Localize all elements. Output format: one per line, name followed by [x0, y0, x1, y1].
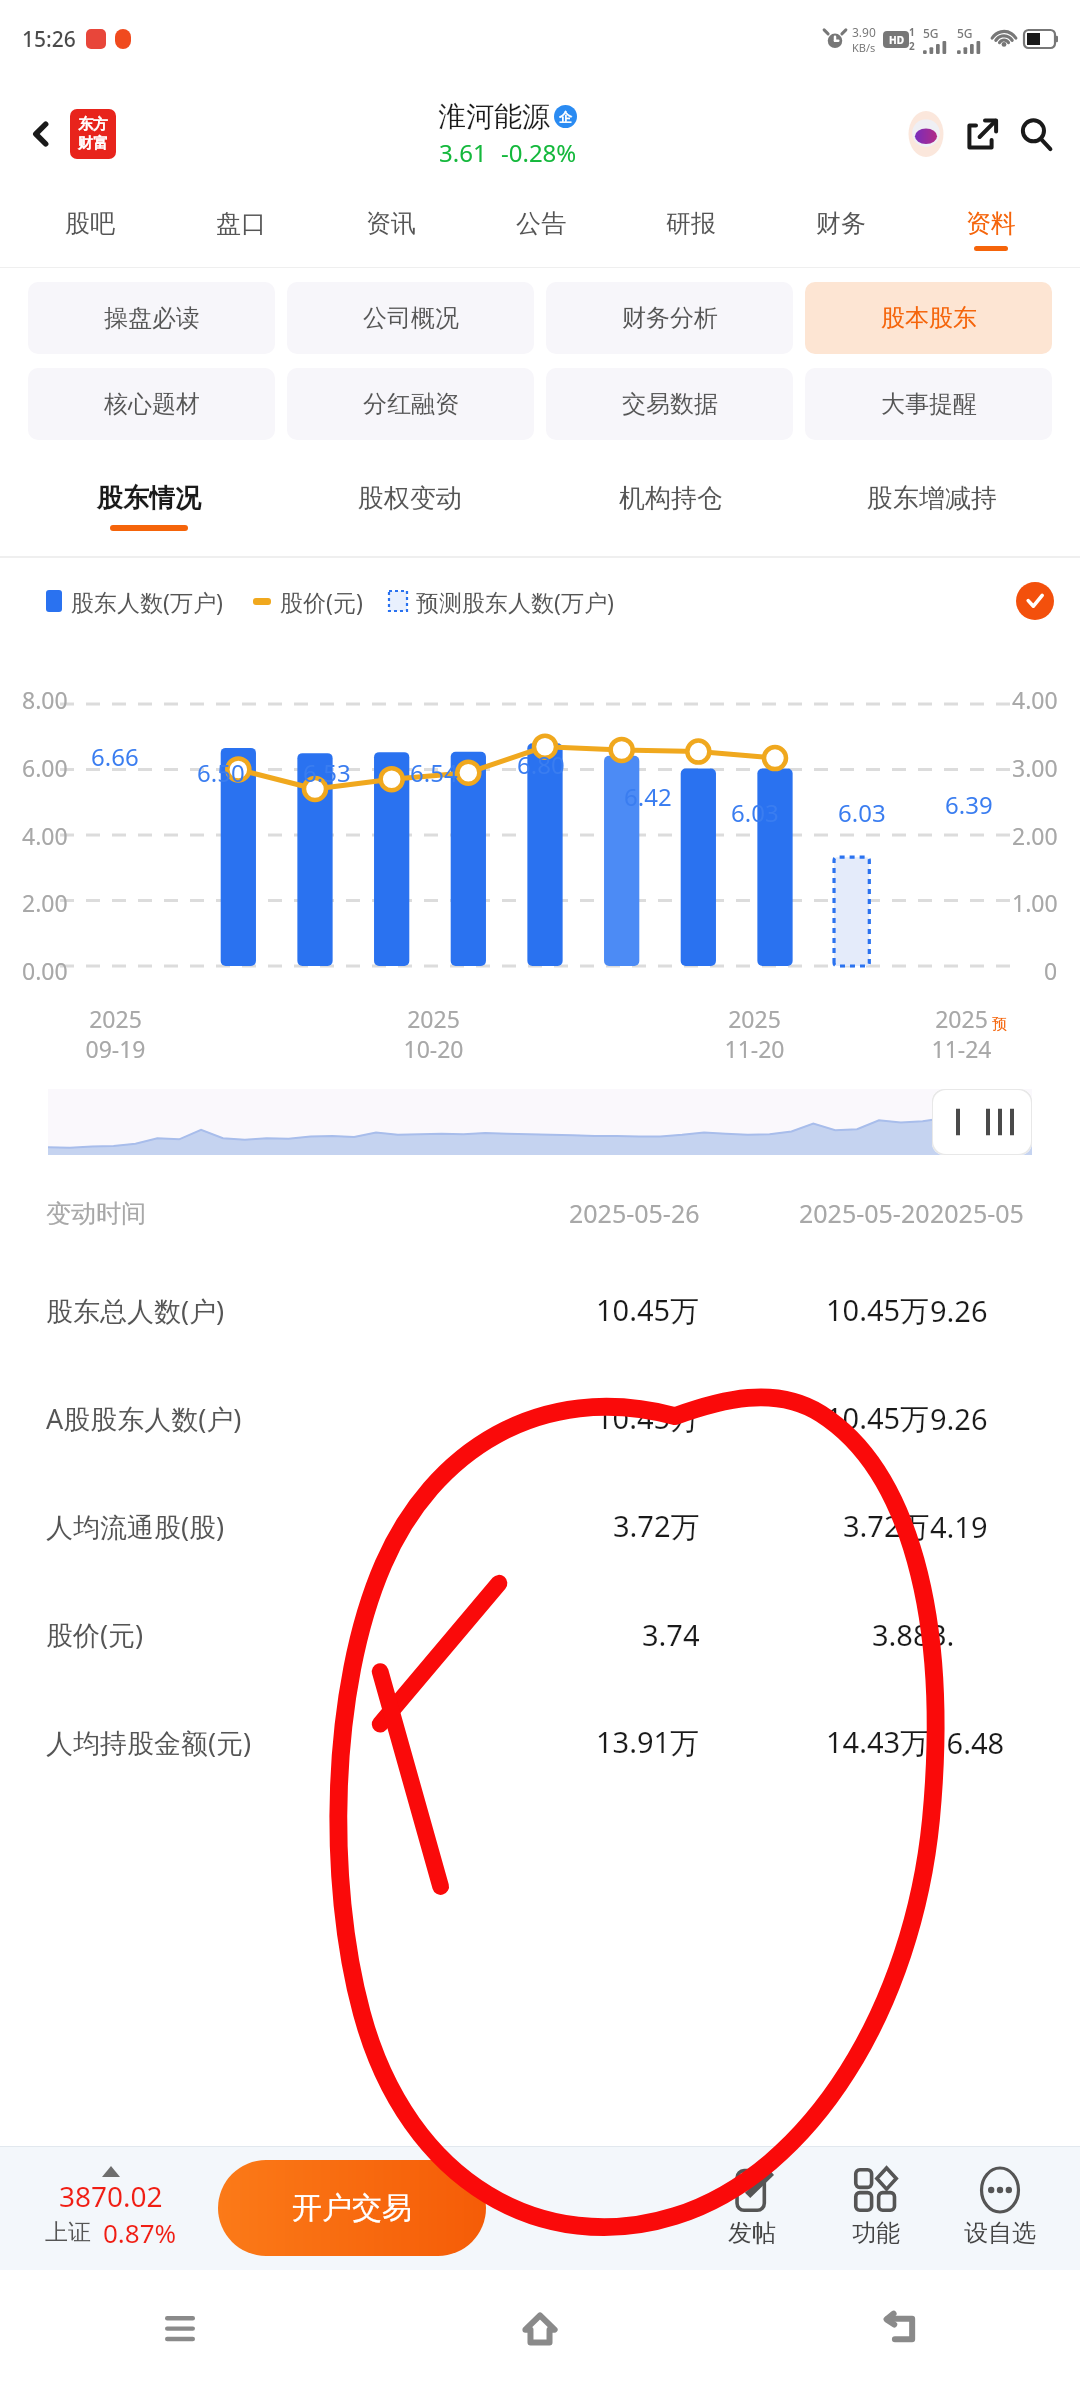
staticText: 0	[1044, 955, 1058, 986]
button[interactable]: 开户交易	[218, 2160, 486, 2256]
staticText: 1	[909, 25, 915, 39]
staticText: 9.26	[930, 1291, 988, 1330]
staticText: 企	[559, 109, 572, 125]
staticText: -0.28%	[501, 136, 577, 169]
staticText: 6.50	[197, 756, 245, 789]
button[interactable]: Back	[18, 111, 64, 157]
button[interactable]: 盘口	[165, 190, 316, 268]
button[interactable]: 研报	[616, 190, 766, 268]
staticText: 发帖	[728, 2218, 776, 2248]
staticText: 5G	[957, 25, 973, 41]
button[interactable]: 淮河能源	[438, 99, 577, 169]
button[interactable]: 股东情况	[18, 454, 279, 558]
button[interactable]: East Money	[70, 109, 116, 159]
button[interactable]: 操盘必读	[28, 282, 275, 354]
staticText: 公司概况	[363, 303, 459, 333]
staticText: 8.00	[22, 684, 68, 715]
button[interactable]: 发帖	[690, 2146, 814, 2270]
button[interactable]: 股东增减持	[801, 454, 1062, 558]
button[interactable]: 人均流通股(股)	[0, 1472, 1080, 1580]
staticText: KB/s	[852, 40, 876, 55]
staticText: 淮河能源	[438, 99, 550, 134]
button[interactable]: Layout toggle	[932, 1089, 1032, 1155]
staticText: 股东增减持	[867, 482, 997, 515]
staticText: 3.88	[872, 1615, 930, 1654]
button[interactable]: 资讯	[316, 190, 466, 268]
staticText: 机构持仓	[619, 482, 723, 515]
staticText: 2025-05-20	[799, 1196, 930, 1230]
staticText: 盘口	[216, 208, 266, 239]
staticText: 功能	[852, 2218, 900, 2248]
staticText: 股权变动	[358, 482, 462, 515]
staticText: 股东人数(万户)	[71, 586, 223, 617]
staticText: 预测股东人数(万户)	[416, 586, 614, 617]
button[interactable]: A股股东人数(户)	[0, 1364, 1080, 1472]
staticText: 操盘必读	[104, 303, 200, 333]
staticText: 预	[992, 1015, 1007, 1034]
button[interactable]: 3870.02	[18, 2166, 204, 2250]
button[interactable]: 股吧	[14, 190, 165, 268]
staticText: 4.00	[22, 820, 68, 851]
staticText: 16.48	[930, 1723, 1005, 1762]
staticText: A股股东人数(户)	[46, 1400, 242, 1437]
button[interactable]: Back	[720, 2270, 1080, 2388]
button[interactable]: 分红融资	[287, 368, 534, 440]
button[interactable]: Share	[956, 108, 1008, 160]
staticText: 6.39	[945, 788, 993, 821]
button[interactable]: 财务分析	[546, 282, 793, 354]
button[interactable]: 公司概况	[287, 282, 534, 354]
button[interactable]: 股东总人数(户)	[0, 1256, 1080, 1364]
button[interactable]: Home	[360, 2270, 720, 2388]
staticText: 大事提醒	[881, 389, 977, 419]
button[interactable]: 股权变动	[279, 454, 540, 558]
staticText: 股价(元)	[280, 586, 363, 617]
button[interactable]: 财务	[766, 190, 916, 268]
staticText: 财富	[78, 134, 108, 153]
staticText: 财务分析	[622, 303, 718, 333]
staticText: 开户交易	[292, 2189, 412, 2227]
button[interactable]: Confirm	[1016, 582, 1054, 620]
button[interactable]: 交易数据	[546, 368, 793, 440]
button[interactable]: Search	[1010, 108, 1062, 160]
button[interactable]: 大事提醒	[805, 368, 1052, 440]
staticText: 人均流通股(股)	[46, 1508, 225, 1545]
staticText: 2025-05-26	[569, 1196, 700, 1230]
button[interactable]: 资料	[916, 190, 1066, 268]
staticText: 6.42	[624, 780, 672, 813]
staticText: 研报	[666, 208, 716, 239]
staticText: 财务	[816, 208, 866, 239]
staticText: 3.72万	[613, 1506, 700, 1546]
button[interactable]: 公告	[466, 190, 616, 268]
staticText: 股吧	[65, 208, 115, 239]
staticText: 交易数据	[622, 389, 718, 419]
staticText: 4.19	[930, 1507, 988, 1546]
staticText: 14.43万	[826, 1722, 930, 1762]
button[interactable]: 核心题材	[28, 368, 275, 440]
button[interactable]: 设自选	[938, 2146, 1062, 2270]
button[interactable]: 股价(元)	[0, 1580, 1080, 1688]
staticText: 2.00	[1012, 820, 1058, 851]
button[interactable]: 股本股东	[805, 282, 1052, 354]
staticText: 10.45万	[596, 1290, 700, 1330]
staticText: 股东情况	[97, 482, 201, 515]
staticText: 4.00	[1012, 684, 1058, 715]
staticText: 6.53	[303, 756, 351, 789]
staticText: 2025 10-20	[403, 1003, 464, 1064]
staticText: 9.26	[930, 1399, 988, 1438]
staticText: 3.00	[1012, 752, 1058, 783]
staticText: 6.00	[22, 752, 68, 783]
staticText: 东方	[78, 115, 108, 134]
button[interactable]: 人均持股金额(元)	[0, 1688, 1080, 1796]
button[interactable]: 功能	[814, 2146, 938, 2270]
button[interactable]: 机构持仓	[540, 454, 801, 558]
staticText: 分红融资	[363, 389, 459, 419]
staticText: 变动时间	[46, 1198, 146, 1229]
button[interactable]: Assistant	[900, 108, 952, 160]
staticText: 5G	[923, 25, 939, 41]
staticText: 2025 09-19	[85, 1003, 146, 1064]
staticText: 10.45万	[596, 1398, 700, 1438]
staticText: 公告	[516, 208, 566, 239]
button[interactable]: Recents	[0, 2270, 360, 2388]
staticText: 资讯	[366, 208, 416, 239]
staticText: 6.80	[517, 748, 565, 781]
